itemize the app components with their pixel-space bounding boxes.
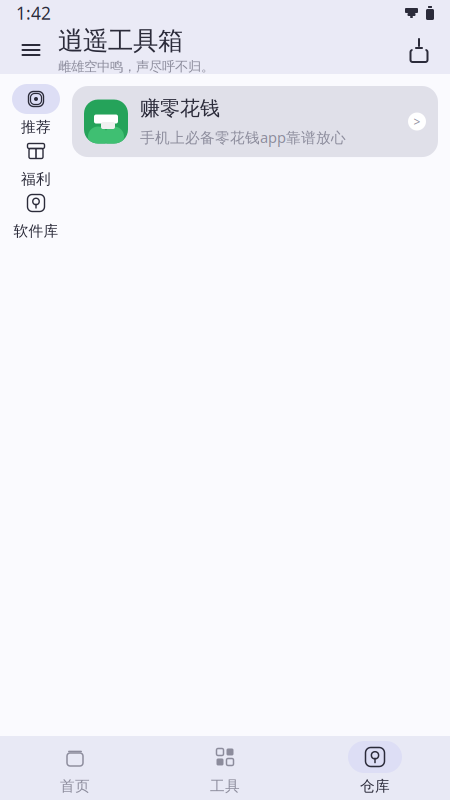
staticText: 逍遥工具箱 xyxy=(58,25,183,56)
staticText: 仓库 xyxy=(360,777,390,795)
staticText: > xyxy=(413,114,420,129)
button[interactable]: 赚零花钱 xyxy=(72,86,438,157)
staticText: 雌雄空中鸣，声尽呼不归。 xyxy=(58,58,214,75)
staticText: 赚零花钱 xyxy=(140,96,220,121)
staticText: 首页 xyxy=(60,777,90,795)
staticText: 软件库 xyxy=(13,222,58,240)
button[interactable]: 软件库 xyxy=(0,188,72,240)
button[interactable]: 工具 xyxy=(150,736,300,800)
staticText: 推荐 xyxy=(21,118,51,136)
button[interactable]: 下载 xyxy=(398,29,440,71)
staticText: 1:42 xyxy=(16,1,51,24)
button[interactable]: 推荐 xyxy=(0,84,72,136)
staticText: 手机上必备零花钱app靠谱放心 xyxy=(140,128,346,147)
button[interactable]: 福利 xyxy=(0,136,72,188)
button[interactable]: 仓库 xyxy=(300,736,450,800)
staticText: 工具 xyxy=(210,777,240,795)
button[interactable]: 首页 xyxy=(0,736,150,800)
staticText: 福利 xyxy=(21,170,51,188)
button[interactable]: 菜单 xyxy=(10,29,52,71)
